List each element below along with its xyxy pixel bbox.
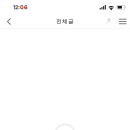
button[interactable]: Back — [0, 14, 18, 28]
staticText: 전체글 — [56, 18, 74, 25]
button[interactable]: Profile — [102, 14, 115, 28]
button[interactable]: Menu — [115, 14, 130, 28]
staticText: 12:06 — [13, 4, 27, 10]
